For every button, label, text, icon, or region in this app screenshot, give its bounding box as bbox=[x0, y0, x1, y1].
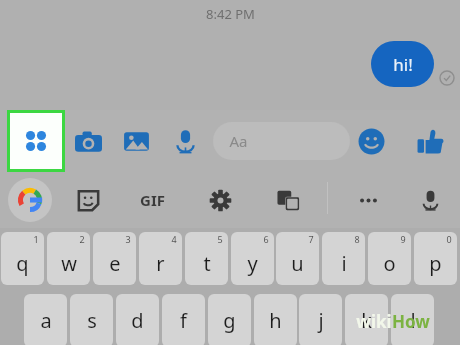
button[interactable]: Keyboard settings bbox=[200, 180, 240, 220]
staticText: w bbox=[61, 250, 77, 277]
staticText: How bbox=[392, 310, 430, 333]
button[interactable]: j bbox=[299, 294, 342, 345]
button[interactable]: hi! bbox=[371, 41, 434, 87]
button[interactable]: Voice input bbox=[410, 180, 450, 220]
staticText: GIF bbox=[140, 190, 165, 210]
staticText: f bbox=[180, 307, 187, 334]
staticText: 8:42 PM bbox=[206, 5, 255, 23]
button[interactable]: s bbox=[70, 294, 113, 345]
staticText: 3 bbox=[125, 233, 131, 245]
staticText: a bbox=[40, 307, 52, 334]
staticText: y bbox=[247, 250, 258, 277]
button[interactable]: Send like bbox=[409, 120, 451, 162]
button[interactable]: 9 bbox=[368, 232, 411, 285]
button[interactable]: Aa bbox=[213, 122, 350, 160]
button[interactable]: Emoji bbox=[350, 120, 392, 162]
button[interactable]: Google search bbox=[8, 178, 52, 222]
button[interactable]: 4 bbox=[139, 232, 182, 285]
button[interactable]: l bbox=[391, 294, 434, 345]
staticText: k bbox=[361, 307, 372, 334]
button[interactable]: 0 bbox=[414, 232, 457, 285]
other: Delivered bbox=[439, 70, 455, 86]
staticText: 8 bbox=[354, 233, 360, 245]
button[interactable]: 7 bbox=[276, 232, 319, 285]
button[interactable]: d bbox=[116, 294, 159, 345]
staticText: Aa bbox=[229, 131, 248, 151]
staticText: 6 bbox=[263, 233, 269, 245]
staticText: j bbox=[318, 307, 324, 334]
button[interactable]: Photos bbox=[115, 120, 157, 162]
button[interactable]: Translate bbox=[268, 180, 308, 220]
staticText: 4 bbox=[171, 233, 177, 245]
button[interactable]: 6 bbox=[231, 232, 274, 285]
staticText: 1 bbox=[33, 233, 39, 245]
staticText: 2 bbox=[79, 233, 85, 245]
button[interactable]: Stickers bbox=[68, 180, 108, 220]
staticText: wiki bbox=[356, 310, 392, 333]
staticText: t bbox=[203, 250, 211, 277]
button[interactable]: 2 bbox=[47, 232, 90, 285]
staticText: h bbox=[269, 307, 282, 334]
staticText: 9 bbox=[400, 233, 406, 245]
staticText: 0 bbox=[446, 233, 452, 245]
staticText: hi! bbox=[393, 53, 413, 76]
button[interactable]: More options bbox=[348, 180, 388, 220]
button[interactable]: 5 bbox=[185, 232, 228, 285]
staticText: 5 bbox=[217, 233, 223, 245]
button[interactable]: h bbox=[254, 294, 297, 345]
button[interactable]: More apps bbox=[7, 110, 65, 172]
button[interactable]: 8 bbox=[322, 232, 365, 285]
staticText: q bbox=[16, 250, 29, 277]
staticText: e bbox=[109, 250, 121, 277]
button[interactable]: a bbox=[24, 294, 67, 345]
button[interactable]: g bbox=[208, 294, 251, 345]
staticText: p bbox=[429, 250, 442, 277]
staticText: g bbox=[223, 307, 236, 334]
staticText: i bbox=[341, 250, 347, 277]
button[interactable]: 3 bbox=[93, 232, 136, 285]
button[interactable]: Camera bbox=[67, 120, 109, 162]
staticText: 7 bbox=[308, 233, 314, 245]
button[interactable]: k bbox=[345, 294, 388, 345]
button[interactable]: f bbox=[162, 294, 205, 345]
staticText: l bbox=[410, 307, 416, 334]
staticText: o bbox=[383, 250, 396, 277]
button[interactable]: 1 bbox=[1, 232, 44, 285]
button[interactable]: GIF bbox=[130, 186, 174, 214]
staticText: d bbox=[131, 307, 144, 334]
staticText: u bbox=[291, 250, 304, 277]
staticText: r bbox=[156, 250, 165, 277]
staticText: s bbox=[87, 307, 97, 334]
button[interactable]: Voice message bbox=[164, 120, 206, 162]
